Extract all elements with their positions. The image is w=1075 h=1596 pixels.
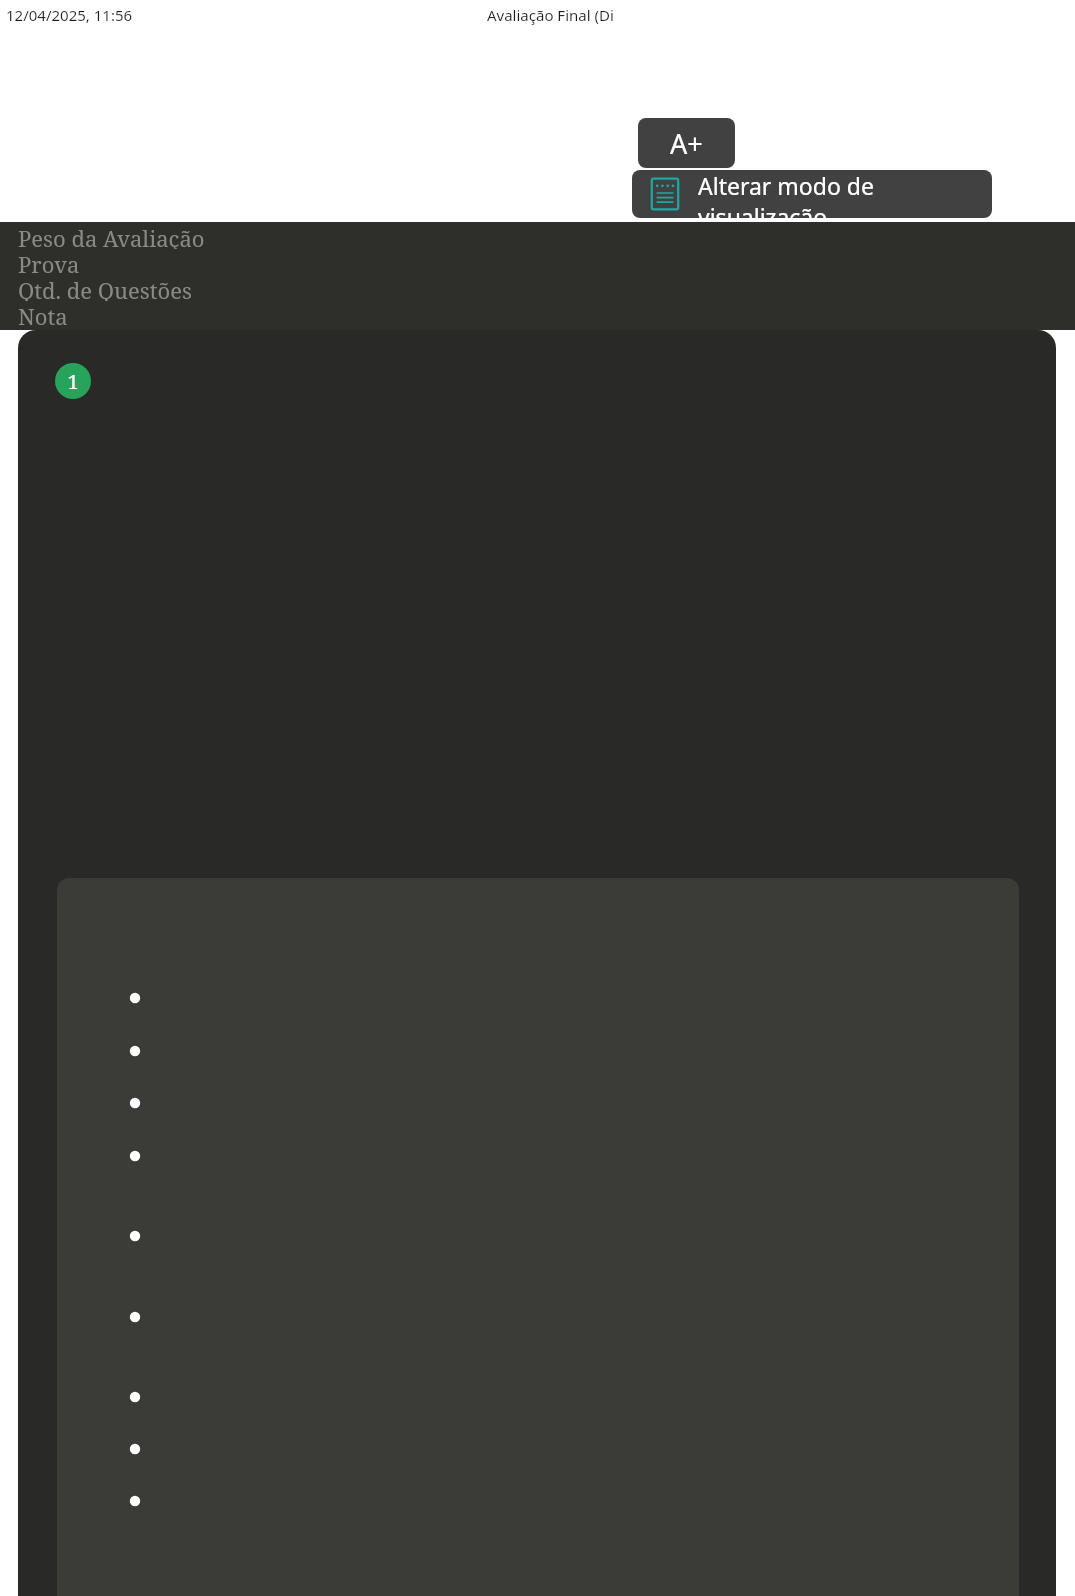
staticText: Nota <box>18 301 68 327</box>
staticText: Prova <box>18 249 80 275</box>
staticText: A+ <box>670 125 703 162</box>
staticText: Qtd. de Questões <box>18 275 192 301</box>
staticText: 1 <box>67 368 79 395</box>
staticText: Peso da Avaliação <box>18 223 205 249</box>
button[interactable]: 1 <box>55 363 91 399</box>
staticText: Alterar modo de visualização <box>698 170 992 218</box>
staticText: Avaliação Final (Di <box>487 5 614 25</box>
button[interactable]: Aumentar fonte <box>638 118 735 168</box>
staticText: 12/04/2025, 11:56 <box>6 5 133 25</box>
button[interactable]: Alterar modo de visualização <box>632 170 992 218</box>
